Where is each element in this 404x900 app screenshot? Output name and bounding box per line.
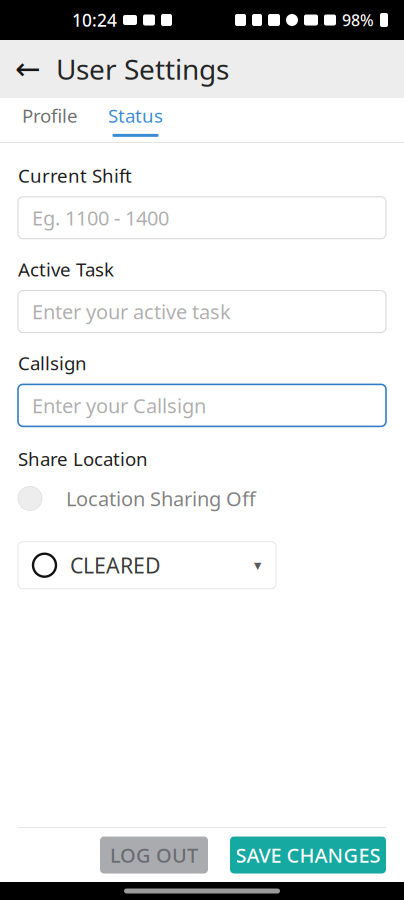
staticText: ← bbox=[15, 52, 41, 86]
staticText: Active Task bbox=[18, 257, 114, 282]
staticText: Current Shift bbox=[18, 163, 132, 188]
staticText: ▾ bbox=[254, 557, 261, 573]
staticText: Callsign bbox=[18, 351, 87, 375]
staticText: 98% bbox=[342, 9, 374, 31]
button[interactable]: Status bbox=[104, 103, 167, 137]
staticText: Location Sharing Off bbox=[66, 485, 256, 512]
button[interactable]: SAVE CHANGES bbox=[230, 836, 386, 873]
button[interactable]: Location Sharing Off bbox=[18, 481, 386, 516]
staticText: User Settings bbox=[56, 50, 229, 88]
button[interactable]: Back bbox=[0, 40, 56, 98]
button[interactable]: CLEARED bbox=[18, 542, 276, 589]
staticText: LOG OUT bbox=[110, 842, 198, 868]
button[interactable]: Enter your active task bbox=[18, 291, 386, 333]
staticText: Profile bbox=[22, 103, 78, 128]
button[interactable]: Enter your Callsign bbox=[18, 384, 386, 426]
staticText: SAVE CHANGES bbox=[235, 842, 380, 868]
button[interactable]: LOG OUT bbox=[100, 836, 208, 873]
staticText: Status bbox=[108, 103, 163, 128]
button[interactable]: Eg. 1100 - 1400 bbox=[18, 197, 386, 239]
staticText: 10:24 bbox=[72, 8, 117, 31]
staticText: Share Location bbox=[18, 446, 148, 471]
staticText: Enter your Callsign bbox=[32, 392, 206, 419]
button[interactable]: Profile bbox=[18, 103, 82, 137]
staticText: Enter your active task bbox=[32, 298, 231, 325]
staticText: Eg. 1100 - 1400 bbox=[32, 204, 169, 231]
staticText: CLEARED bbox=[70, 551, 161, 579]
